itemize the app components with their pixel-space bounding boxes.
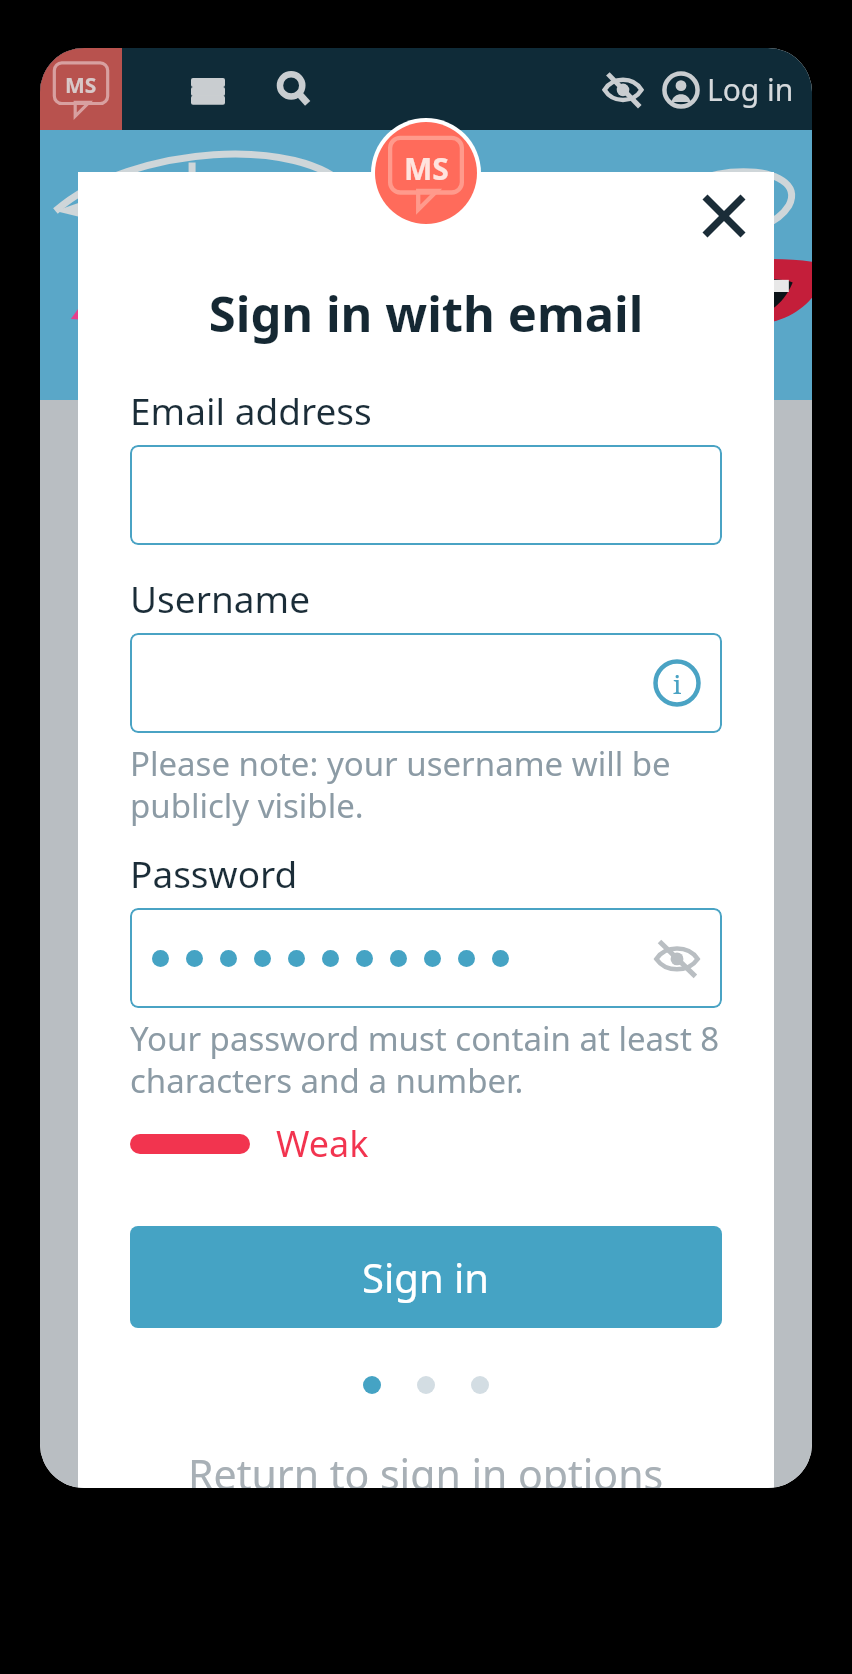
button[interactable]: Show password	[130, 908, 722, 1008]
button[interactable]: Username info	[650, 656, 704, 710]
staticText: i	[673, 666, 682, 701]
button[interactable]: Log in	[659, 61, 798, 118]
button[interactable]: Search	[266, 61, 322, 117]
button[interactable]: Username info	[130, 633, 722, 733]
staticText: Log in	[707, 69, 794, 110]
staticText: MS	[65, 71, 97, 100]
button[interactable]	[130, 445, 722, 545]
staticText: MS	[404, 148, 449, 189]
staticText: Password	[130, 848, 298, 898]
button[interactable]: Hide	[593, 59, 653, 119]
staticText: Email address	[130, 385, 372, 435]
button[interactable]: Page 3	[471, 1376, 489, 1394]
staticText: Your password must contain at least 8 ch…	[130, 1016, 720, 1103]
staticText: Sign in	[362, 1250, 490, 1304]
staticText: Weak	[276, 1119, 369, 1168]
button[interactable]: Sign in	[130, 1226, 722, 1328]
staticText: Username	[130, 573, 311, 623]
button[interactable]: Close	[692, 184, 756, 248]
button[interactable]: Return to sign in options	[130, 1446, 722, 1488]
staticText: Return to sign in options	[188, 1446, 664, 1488]
button[interactable]: Page 1	[363, 1376, 381, 1394]
staticText: Sign in with email	[78, 280, 774, 347]
button[interactable]: Show password	[648, 929, 706, 987]
button[interactable]: Menu	[180, 61, 236, 117]
button[interactable]: Page 2	[417, 1376, 435, 1394]
button[interactable]: Home	[40, 48, 122, 130]
staticText: Please note: your username will be publi…	[130, 741, 671, 828]
